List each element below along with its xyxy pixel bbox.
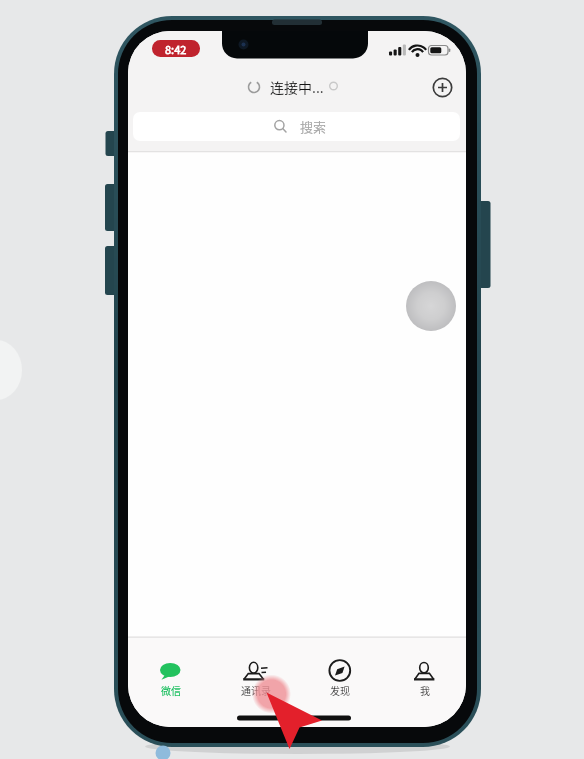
button[interactable] xyxy=(128,638,213,713)
button[interactable] xyxy=(406,281,456,331)
staticText: 微信 xyxy=(161,683,181,697)
button[interactable]: 搜索 xyxy=(133,112,460,141)
staticText: 我 xyxy=(420,683,430,697)
staticText: 8:42 xyxy=(165,41,187,57)
staticText: 发现 xyxy=(330,683,350,697)
button[interactable] xyxy=(213,638,298,713)
button[interactable] xyxy=(431,76,454,99)
staticText: 通讯录 xyxy=(241,683,271,697)
button[interactable] xyxy=(297,638,382,713)
staticText: 搜索 xyxy=(300,117,327,136)
staticText: 连接中... xyxy=(270,77,324,97)
button[interactable] xyxy=(382,638,466,713)
